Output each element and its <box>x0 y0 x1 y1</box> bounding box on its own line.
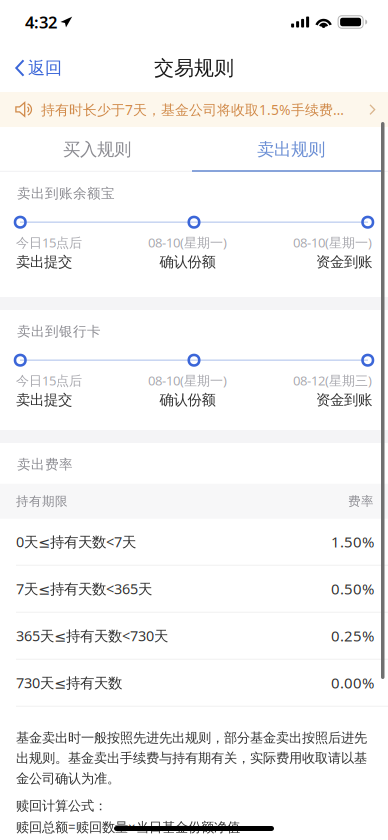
staticText: 资金到账 <box>316 391 372 409</box>
staticText: 08-12(星期三) <box>293 372 372 389</box>
staticText: 08-10(星期一) <box>293 234 372 251</box>
staticText: 730天≤持有天数 <box>16 673 122 692</box>
staticText: 365天≤持有天数<730天 <box>16 626 168 645</box>
button[interactable]: 卖出规则 <box>194 127 388 172</box>
staticText: 0.00% <box>331 673 374 693</box>
button[interactable]: 0天≤持有天数<7天 <box>0 519 388 566</box>
staticText: 4:32 <box>25 11 57 33</box>
staticText: 基金卖出时一般按照先进先出规则，部分基金卖出按照后进先出规则。基金卖出手续费与持… <box>16 730 367 787</box>
staticText: 7天≤持有天数<365天 <box>16 579 152 598</box>
button[interactable]: 买入规则 <box>0 127 194 172</box>
staticText: 卖出提交 <box>16 391 72 409</box>
staticText: 卖出提交 <box>16 253 72 271</box>
staticText: 1.50% <box>331 532 374 552</box>
staticText: 08-10(星期一) <box>148 234 227 251</box>
staticText: 08-10(星期一) <box>148 372 227 389</box>
staticText: 0天≤持有天数<7天 <box>16 532 136 551</box>
staticText: 今日15点后 <box>16 234 82 251</box>
staticText: 赎回总额=赎回数量×当日基金份额净值 <box>16 818 240 835</box>
staticText: 资金到账 <box>316 253 372 271</box>
staticText: 费率 <box>348 493 374 509</box>
button[interactable]: 持有时长少于7天，基金公司将收取1.5%手续费… <box>0 92 388 127</box>
staticText: 持有期限 <box>16 493 68 509</box>
staticText: 今日15点后 <box>16 372 82 389</box>
button[interactable]: 730天≤持有天数 <box>0 660 388 707</box>
staticText: 卖出费率 <box>17 456 73 473</box>
staticText: 0.25% <box>331 626 374 646</box>
staticText: 确认份额 <box>159 391 215 409</box>
staticText: 赎回计算公式： <box>16 798 107 814</box>
staticText: 卖出规则 <box>257 139 325 160</box>
staticText: 卖出到银行卡 <box>17 323 101 340</box>
button[interactable]: 返回 <box>0 44 72 92</box>
staticText: 确认份额 <box>159 253 215 271</box>
staticText: 卖出到账余额宝 <box>17 185 115 202</box>
staticText: 买入规则 <box>63 139 131 160</box>
button[interactable]: 7天≤持有天数<365天 <box>0 566 388 613</box>
staticText: 持有时长少于7天，基金公司将收取1.5%手续费… <box>41 100 344 119</box>
staticText: 交易规则 <box>154 56 234 80</box>
button[interactable]: 365天≤持有天数<730天 <box>0 613 388 660</box>
staticText: 返回 <box>28 57 62 78</box>
staticText: 0.50% <box>331 579 374 599</box>
